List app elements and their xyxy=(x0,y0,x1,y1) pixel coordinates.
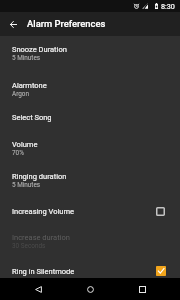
staticText: 30 Seconds xyxy=(12,242,46,250)
staticText: 5 Minutes xyxy=(12,181,41,189)
staticText: 8:30 xyxy=(161,2,175,10)
button[interactable]: Home xyxy=(78,278,102,300)
staticText: Ring in Silentmode xyxy=(12,267,75,276)
button[interactable]: Volume xyxy=(0,134,180,164)
button[interactable]: Increasing Volume xyxy=(0,197,180,227)
staticText: Increasing Volume xyxy=(12,207,74,216)
button[interactable]: Back xyxy=(0,12,26,36)
staticText: Ringing duration xyxy=(12,172,67,181)
button[interactable]: Snooze Duration xyxy=(0,36,180,71)
button[interactable]: Select Song xyxy=(0,104,180,134)
button[interactable]: Alarmtone xyxy=(0,70,180,104)
button[interactable]: Back xyxy=(26,278,50,300)
staticText: Volume xyxy=(12,140,38,149)
staticText: Snooze Duration xyxy=(12,45,67,54)
button[interactable]: Ring in Silentmode xyxy=(0,257,180,278)
staticText: 70% xyxy=(12,149,24,157)
button[interactable]: Ringing duration xyxy=(0,163,180,197)
staticText: Alarmtone xyxy=(12,81,47,90)
staticText: Argon xyxy=(12,90,30,98)
button[interactable]: Increase duration xyxy=(0,227,180,257)
staticText: 5 Minutes xyxy=(12,54,41,62)
button[interactable]: Recents xyxy=(130,278,154,300)
staticText: Alarm Preferences xyxy=(27,18,106,29)
staticText: Select Song xyxy=(12,113,52,122)
staticText: Increase duration xyxy=(12,233,70,242)
